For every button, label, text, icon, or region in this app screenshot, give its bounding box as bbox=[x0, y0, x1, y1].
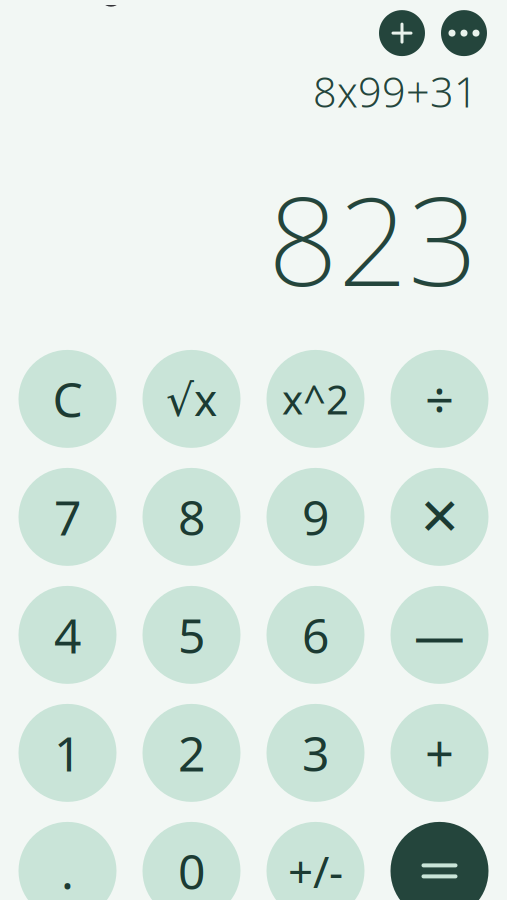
button[interactable]: Equals bbox=[390, 822, 488, 900]
staticText: 3 bbox=[302, 721, 329, 785]
staticText: + bbox=[425, 719, 454, 786]
button[interactable]: 3 bbox=[266, 704, 364, 802]
button[interactable]: — bbox=[390, 586, 488, 684]
button[interactable]: ÷ bbox=[390, 350, 488, 448]
staticText: ✕ bbox=[418, 488, 460, 546]
staticText: ÷ bbox=[425, 365, 454, 432]
button[interactable]: More options bbox=[441, 10, 487, 56]
button[interactable]: 5 bbox=[142, 586, 240, 684]
button[interactable]: Add bbox=[379, 10, 425, 56]
staticText: 7 bbox=[54, 485, 81, 549]
button[interactable]: 4 bbox=[18, 586, 116, 684]
staticText: C bbox=[52, 367, 82, 431]
button[interactable]: ✕ bbox=[390, 468, 488, 566]
button[interactable]: + bbox=[390, 704, 488, 802]
button[interactable]: 8 bbox=[142, 468, 240, 566]
button[interactable]: 1 bbox=[18, 704, 116, 802]
staticText: 823 bbox=[268, 157, 478, 320]
button[interactable]: 7 bbox=[18, 468, 116, 566]
staticText: 4 bbox=[54, 603, 81, 667]
staticText: +/- bbox=[288, 842, 343, 900]
staticText: 1 bbox=[54, 721, 81, 785]
staticText: 8x99+31 bbox=[313, 64, 478, 119]
button[interactable]: +/- bbox=[266, 822, 364, 900]
button[interactable]: √x bbox=[142, 350, 240, 448]
staticText: 2 bbox=[178, 721, 205, 785]
button[interactable]: 0 bbox=[142, 822, 240, 900]
staticText: 8 bbox=[178, 485, 205, 549]
staticText: 0 bbox=[178, 839, 205, 900]
staticText: x^2 bbox=[282, 372, 349, 425]
staticText: 6 bbox=[302, 603, 329, 667]
button[interactable]: C bbox=[18, 350, 116, 448]
staticText: . bbox=[61, 839, 74, 900]
button[interactable]: 6 bbox=[266, 586, 364, 684]
button[interactable]: x^2 bbox=[266, 350, 364, 448]
staticText: — bbox=[414, 601, 465, 668]
staticText: √x bbox=[166, 370, 217, 428]
button[interactable]: 2 bbox=[142, 704, 240, 802]
button[interactable]: . bbox=[18, 822, 116, 900]
button[interactable]: 9 bbox=[266, 468, 364, 566]
staticText: 9 bbox=[302, 485, 329, 549]
staticText: 5 bbox=[178, 603, 205, 667]
